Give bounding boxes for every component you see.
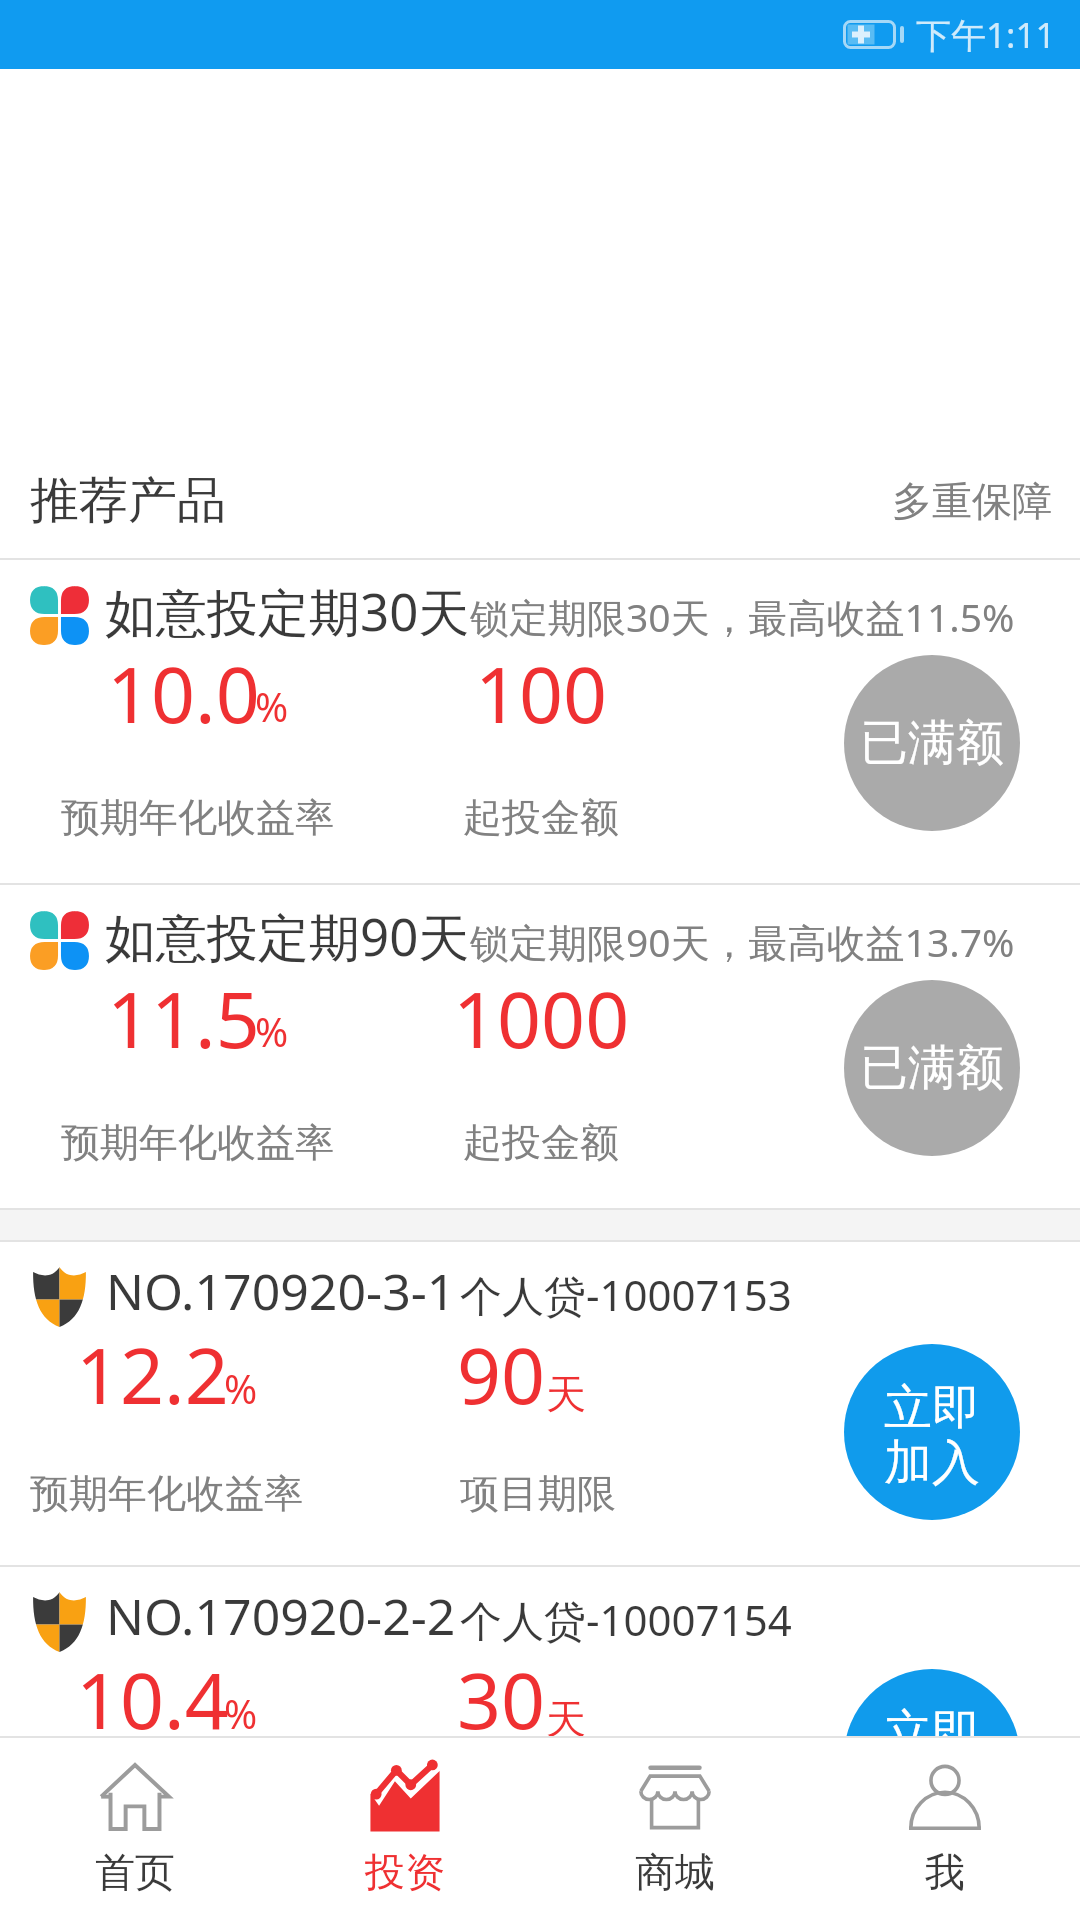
staticText: % [224,1361,258,1415]
other: Store [639,1761,711,1833]
button[interactable]: 立即 [844,1344,1020,1520]
staticText: 11.5 [107,966,260,1071]
button[interactable]: Home [0,1738,270,1920]
staticText: 预期年化收益率 [61,1118,334,1167]
staticText: NO.170920-3-1 [106,1257,456,1325]
button[interactable]: NO.170920-3-1 [0,1242,1080,1565]
button[interactable]: Profile [810,1738,1080,1920]
staticText: 预期年化收益率 [61,793,334,842]
staticText: 起投金额 [463,1118,619,1167]
staticText: 已满额 [860,713,1004,773]
button[interactable]: 已满额 [844,980,1020,1156]
staticText: 锁定期限90天，最高收益13.7% [470,915,1015,968]
staticText: 预期年化收益率 [30,1469,303,1518]
other: Profile [909,1761,981,1833]
staticText: 12.2 [76,1322,229,1427]
staticText: 10.0 [107,641,260,746]
staticText: 商城 [635,1847,715,1897]
staticText: % [224,1686,258,1736]
staticText: 起投金额 [463,793,619,842]
staticText: 如意投定期90天 [105,901,470,971]
staticText: 天 [546,1369,586,1419]
staticText: 锁定期限30天，最高收益11.5% [470,590,1015,643]
staticText: 首页 [95,1847,175,1897]
staticText: 加入 [884,1433,980,1493]
staticText: 立即 [884,1378,980,1438]
button[interactable]: 推荐产品 [0,444,1080,558]
staticText: 立即 [884,1703,980,1736]
button[interactable]: 立即 [844,1669,1020,1736]
staticText: 已满额 [860,1038,1004,1098]
staticText: % [255,1004,289,1058]
staticText: 如意投定期30天 [105,576,470,646]
staticText: 30 [457,1647,546,1736]
staticText: 推荐产品 [30,470,226,532]
button[interactable]: NO.170920-2-2 [0,1567,1080,1736]
button[interactable]: Invest [270,1738,540,1920]
staticText: NO.170920-2-2 [106,1582,456,1650]
staticText: 个人贷-10007154 [460,1591,792,1648]
button[interactable]: 如意投定期30天 [0,560,1080,883]
staticText: 1000 [453,966,630,1071]
button[interactable]: 已满额 [844,655,1020,831]
button[interactable]: 如意投定期90天 [0,885,1080,1208]
staticText: 项目期限 [460,1469,616,1518]
staticText: 10.4 [76,1647,229,1736]
staticText: 天 [546,1694,586,1736]
staticText: 多重保障 [892,476,1052,526]
staticText: 我 [925,1847,965,1897]
staticText: % [255,679,289,733]
other: Invest [369,1761,441,1833]
staticText: 个人贷-10007153 [460,1266,792,1323]
other: Home [99,1761,171,1833]
staticText: 100 [475,641,608,746]
staticText: 下午1:11 [916,11,1056,59]
button[interactable]: Store [540,1738,810,1920]
staticText: 投资 [365,1847,445,1897]
staticText: 90 [457,1322,546,1427]
